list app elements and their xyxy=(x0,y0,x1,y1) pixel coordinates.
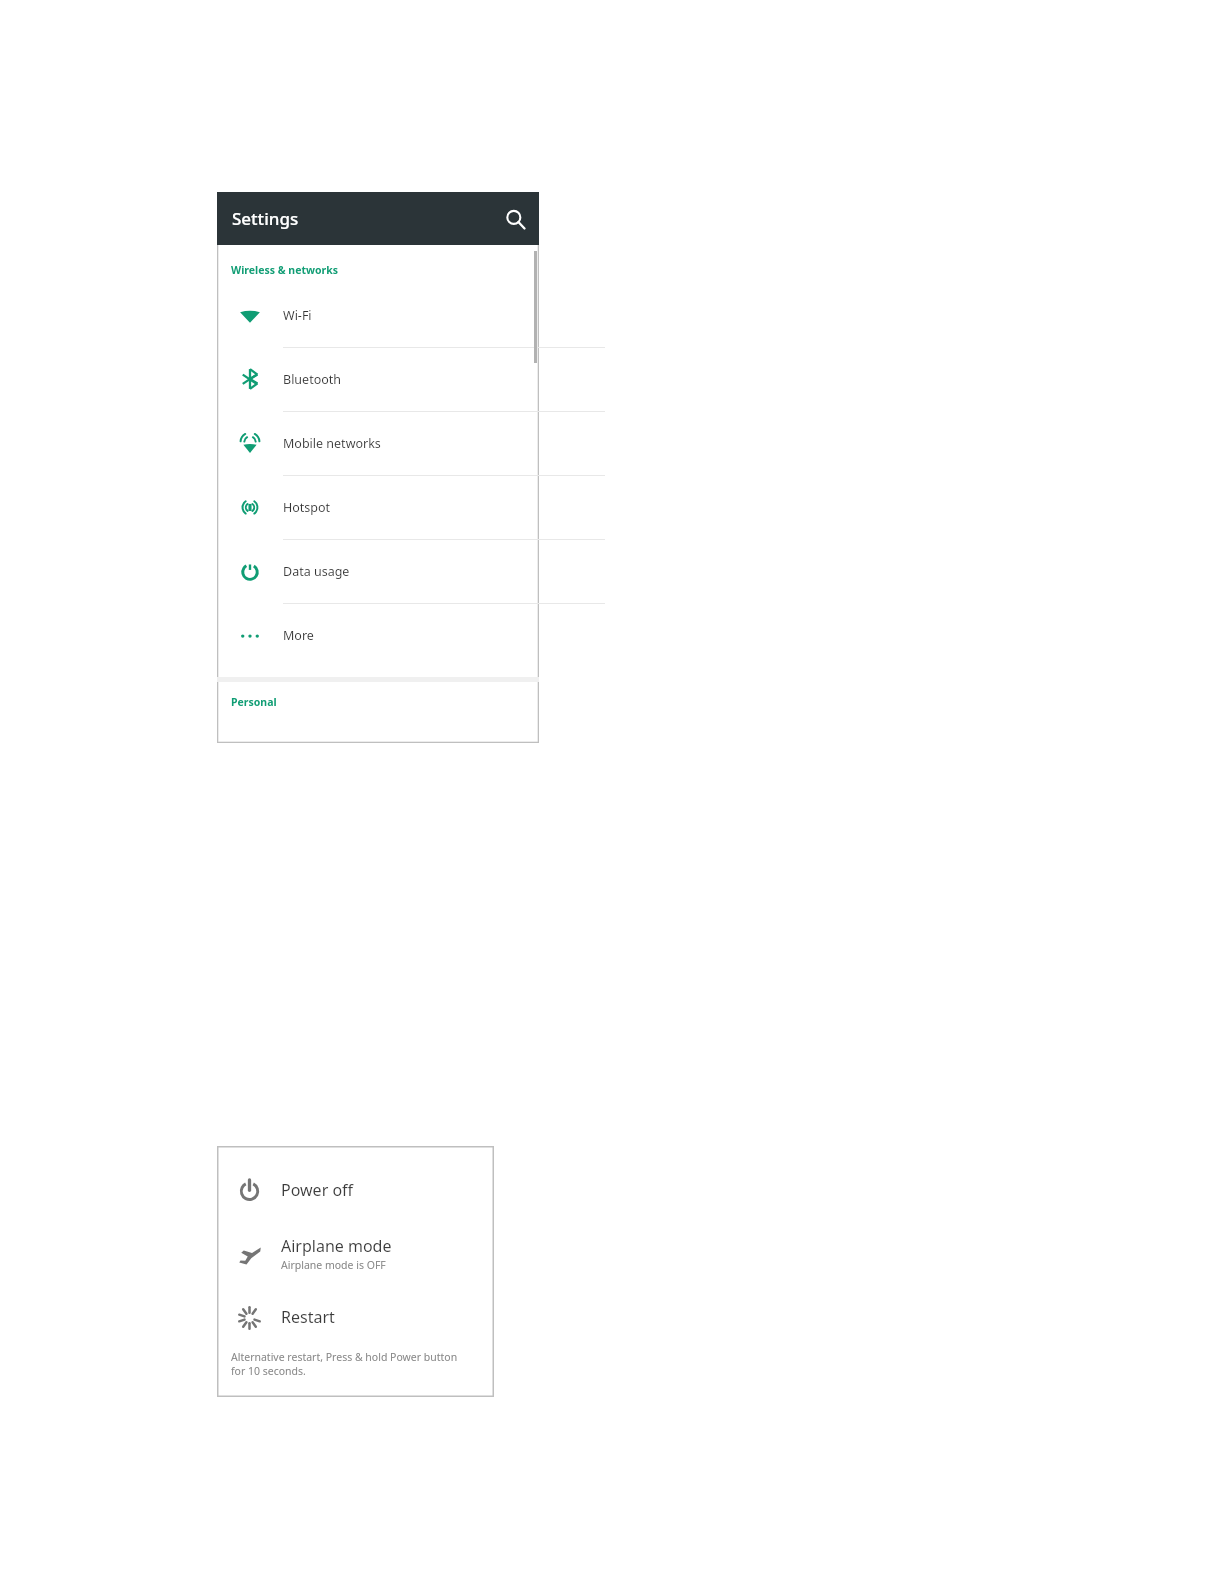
staticText: Power off xyxy=(281,1179,354,1201)
button[interactable]: Airplane mode xyxy=(217,1219,494,1287)
button[interactable]: Bluetooth xyxy=(217,347,539,411)
staticText: Restart xyxy=(281,1306,335,1328)
button[interactable]: Data usage xyxy=(217,539,539,603)
button[interactable]: Mobile networks xyxy=(217,411,539,475)
staticText: Hotspot xyxy=(283,499,331,516)
other: Airplane mode xyxy=(217,1241,281,1266)
button[interactable]: Wi-Fi xyxy=(217,283,539,347)
other: Power off xyxy=(217,1177,281,1202)
staticText: More xyxy=(283,627,314,644)
button[interactable]: Search xyxy=(491,195,539,243)
staticText: Mobile networks xyxy=(283,435,381,452)
staticText: Wi-Fi xyxy=(283,307,312,324)
button[interactable]: More xyxy=(217,603,539,667)
staticText: Airplane mode is OFF xyxy=(281,1258,386,1272)
staticText: Alternative restart, Press & hold Power … xyxy=(231,1350,458,1378)
button[interactable]: Power off xyxy=(217,1160,494,1219)
other: Restart xyxy=(217,1304,281,1329)
staticText: Data usage xyxy=(283,563,350,580)
staticText: Settings xyxy=(232,207,299,230)
staticText: Airplane mode xyxy=(281,1235,392,1257)
button[interactable]: Restart xyxy=(217,1287,494,1346)
staticText: Personal xyxy=(231,695,277,709)
button[interactable]: Hotspot xyxy=(217,475,539,539)
staticText: Wireless & networks xyxy=(231,263,338,277)
staticText: Bluetooth xyxy=(283,371,342,388)
